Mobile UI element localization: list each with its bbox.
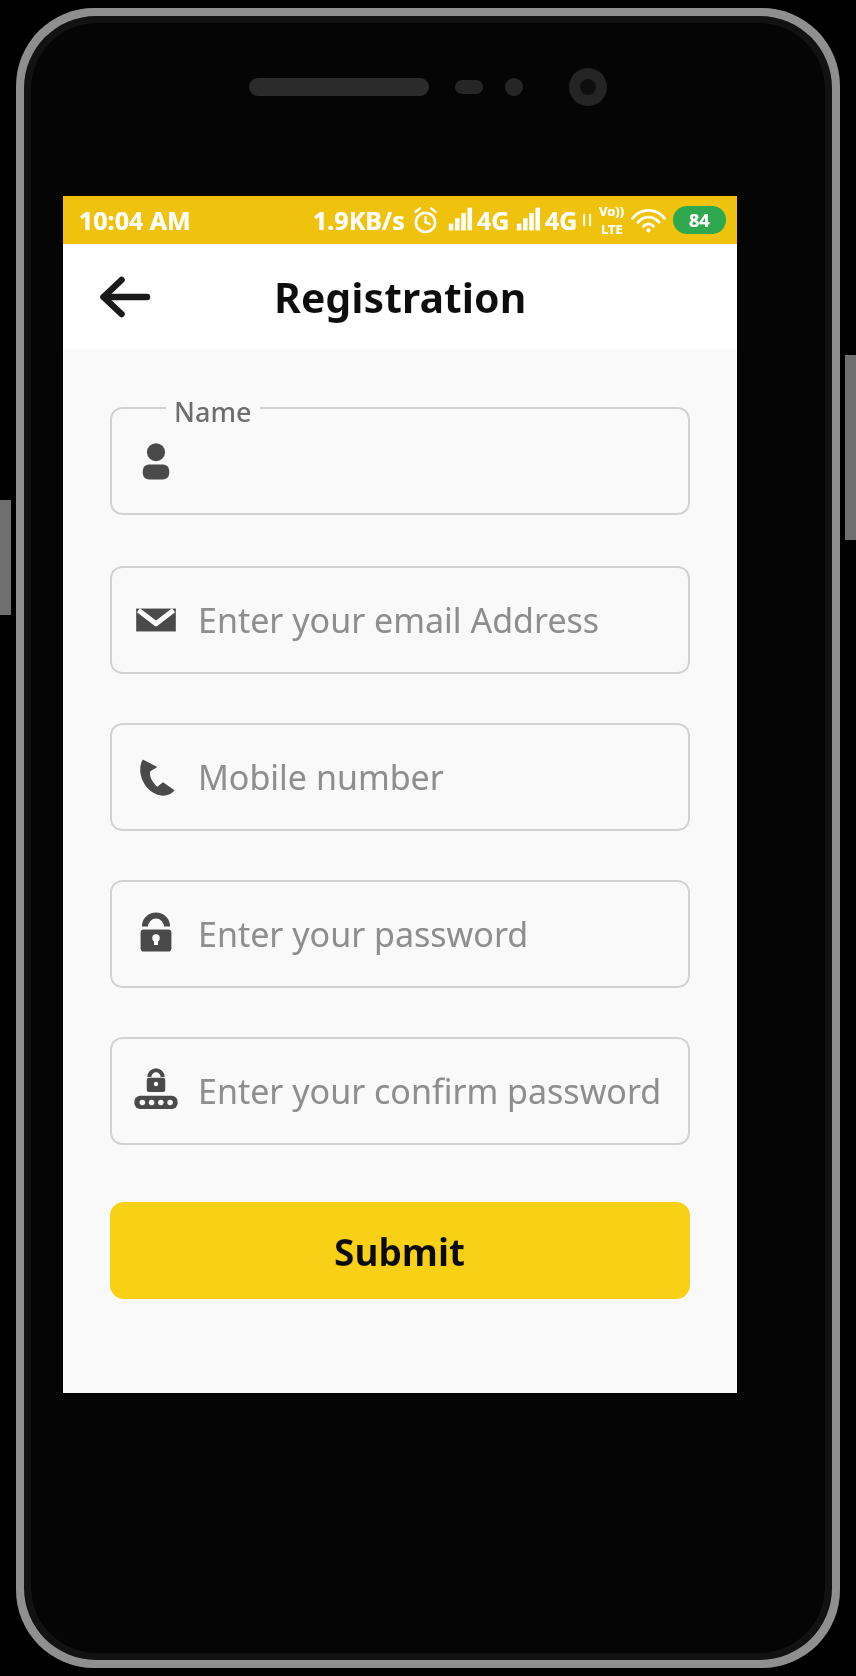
staticText: Registration	[274, 269, 527, 325]
staticText: Enter your email Address	[198, 597, 600, 643]
staticText: 4G	[477, 203, 510, 237]
button[interactable]: Back	[85, 258, 163, 336]
staticText: Name	[174, 393, 252, 430]
staticText: Submit	[334, 1226, 466, 1276]
button[interactable]: Enter your password	[110, 880, 690, 988]
staticText: 4G	[545, 203, 578, 237]
button[interactable]: Enter your email Address	[110, 566, 690, 674]
button[interactable]: Submit	[110, 1202, 690, 1299]
button[interactable]: Enter your confirm password	[110, 1037, 690, 1145]
staticText: Enter your confirm password	[198, 1068, 662, 1114]
button[interactable]	[110, 407, 690, 515]
staticText: 10:04 AM	[79, 203, 191, 237]
staticText: Vo))	[599, 202, 625, 220]
staticText: 84	[689, 208, 710, 233]
staticText: Mobile number	[198, 754, 444, 800]
button[interactable]: Mobile number	[110, 723, 690, 831]
staticText: 1.9KB/s	[313, 203, 405, 237]
staticText: LTE	[601, 220, 623, 238]
staticText: Enter your password	[198, 911, 529, 957]
